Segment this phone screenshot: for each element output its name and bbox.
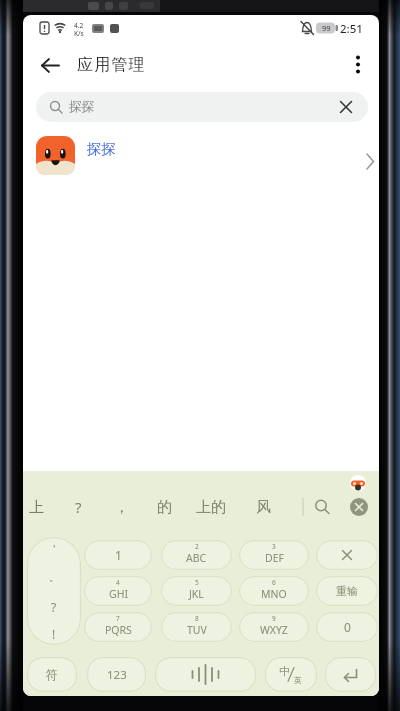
staticText: 0 [344,619,351,635]
button[interactable] [316,540,378,570]
button[interactable]: 重输 [316,576,378,606]
button[interactable]: 2 [161,540,232,570]
staticText: 4.2 [74,21,84,30]
staticText: 风 [256,498,271,517]
staticText: WXYZ [260,623,288,637]
button[interactable] [155,657,256,692]
staticText: ABC [186,551,207,565]
button[interactable]: 4 [84,576,152,606]
button[interactable]: 中 [265,657,317,692]
staticText: 8 [195,614,199,623]
staticText: ! [52,626,56,642]
button[interactable]: 7 [84,612,152,642]
staticText: 重输 [336,584,358,598]
staticText: 7 [116,614,120,623]
staticText: 6 [272,578,276,587]
staticText: 5 [195,578,199,587]
button[interactable]: 1 [84,540,152,570]
staticText: ? [75,497,82,517]
staticText: 9 [272,614,276,623]
button[interactable]: 9 [239,612,309,642]
staticText: 4 [116,578,120,587]
staticText: 。 [49,571,59,584]
button[interactable]: 0 [316,612,378,642]
staticText: 探探 [87,140,116,158]
staticText: 2:51 [340,21,363,37]
staticText: 2 [195,542,199,551]
button[interactable]: 符 [27,657,77,692]
staticText: 的 [157,498,172,517]
staticText: 上的 [196,498,226,517]
button[interactable] [31,48,71,84]
staticText: DEF [265,551,284,565]
staticText: 3 [272,542,276,551]
button[interactable]: 探探 [23,128,379,183]
staticText: ? [51,599,57,615]
staticText: 99 [322,23,331,33]
button[interactable] [343,48,375,84]
button[interactable]: 8 [161,612,232,642]
staticText: ' [53,541,56,556]
staticText: K/s [74,29,84,38]
staticText: 英 [294,675,302,685]
button[interactable]: ' [27,537,81,645]
button[interactable]: 5 [161,576,232,606]
staticText: MNO [261,587,287,601]
staticText: GHI [109,587,128,601]
button[interactable]: 123 [87,657,146,692]
staticText: 1 [115,547,122,563]
button[interactable]: 6 [239,576,309,606]
button[interactable]: 探探 [36,92,368,122]
staticText: JKL [189,587,204,601]
staticText: 123 [107,667,127,683]
button[interactable] [325,657,376,692]
button[interactable]: 3 [239,540,309,570]
staticText: 上 [29,498,44,517]
staticText: 符 [46,667,58,682]
staticText: ， [114,498,129,517]
staticText: PQRS [105,623,132,637]
staticText: TUV [187,623,207,637]
staticText: 中 [279,664,290,678]
staticText: 应用管理 [77,55,146,75]
staticText: 探探 [69,99,94,115]
